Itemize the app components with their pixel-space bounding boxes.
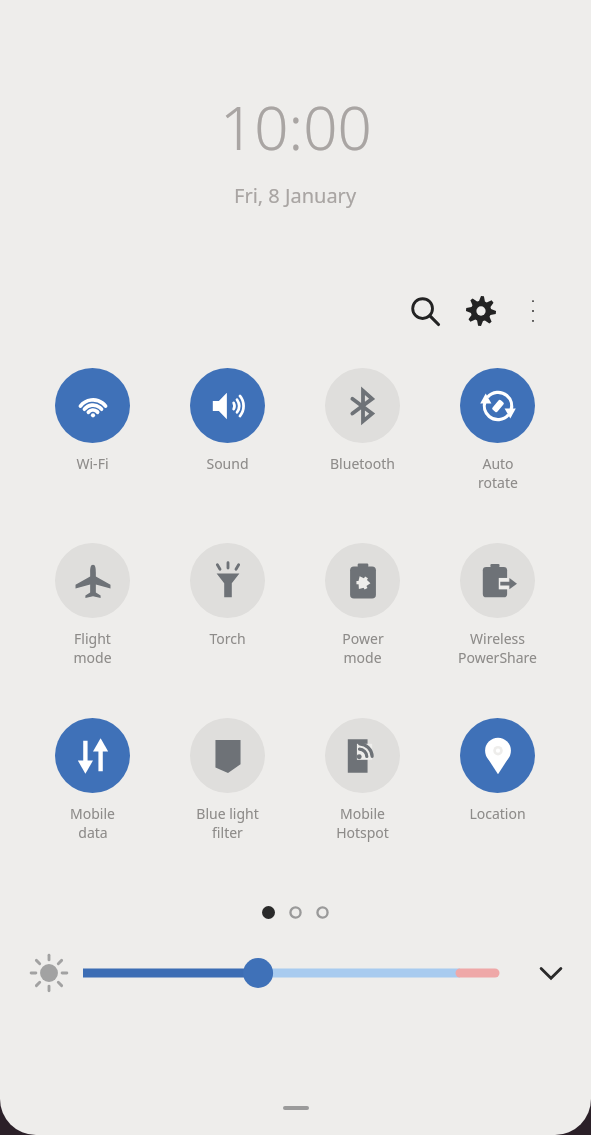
staticText: Hotspot — [336, 823, 389, 842]
button[interactable]: Sound — [160, 368, 295, 473]
staticText: 10:00 — [220, 86, 372, 168]
button[interactable]: Location — [430, 718, 565, 823]
staticText: mode — [73, 648, 112, 667]
staticText: Fri, 8 January — [234, 182, 357, 209]
button[interactable]: Mobile data — [25, 718, 160, 842]
button[interactable]: Power mode — [295, 543, 430, 667]
staticText: filter — [212, 823, 243, 842]
staticText: PowerShare — [458, 648, 537, 667]
staticText: Wireless — [470, 629, 525, 648]
button[interactable]: Torch — [160, 543, 295, 648]
staticText: rotate — [478, 473, 518, 492]
button[interactable]: Wi-Fi — [25, 368, 160, 473]
staticText: Bluetooth — [330, 454, 395, 473]
button[interactable]: Expand — [525, 949, 577, 997]
staticText: Auto — [482, 454, 514, 473]
staticText: Location — [469, 804, 526, 823]
button[interactable]: Auto rotate — [430, 368, 565, 492]
staticText: Wi-Fi — [76, 454, 109, 473]
button[interactable]: More options — [509, 287, 557, 335]
button[interactable]: Flight mode — [25, 543, 160, 667]
button[interactable]: Search — [397, 283, 453, 339]
staticText: Power — [342, 629, 384, 648]
staticText: Sound — [206, 454, 249, 473]
button[interactable]: Mobile Hotspot — [295, 718, 430, 842]
button[interactable]: Settings — [453, 283, 509, 339]
staticText: data — [78, 823, 108, 842]
staticText: Flight — [74, 629, 111, 648]
staticText: Torch — [209, 629, 246, 648]
staticText: Mobile — [340, 804, 385, 823]
button[interactable]: Brightness — [27, 951, 71, 995]
button[interactable]: Wireless PowerShare — [430, 543, 565, 667]
staticText: Mobile — [70, 804, 115, 823]
button[interactable]: Bluetooth — [295, 368, 430, 473]
staticText: mode — [343, 648, 382, 667]
button[interactable]: Brightness slider — [83, 953, 509, 993]
staticText: Blue light — [196, 804, 259, 823]
button[interactable]: Blue light filter — [160, 718, 295, 842]
